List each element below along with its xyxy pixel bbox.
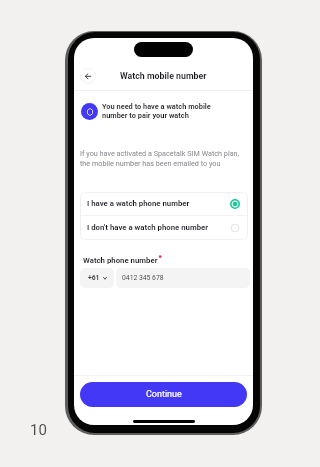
staticText: Watch phone number — [83, 256, 158, 265]
staticText: If you have activated a Spacetalk SIM Wa… — [80, 149, 240, 168]
button[interactable]: I have a watch phone number — [80, 192, 248, 215]
staticText: Watch mobile number — [120, 71, 207, 81]
staticText: You need to have a watch mobile number t… — [102, 102, 211, 120]
button[interactable]: Back — [80, 68, 96, 84]
button[interactable]: Continue — [80, 382, 247, 407]
button[interactable]: I don't have a watch phone number — [80, 216, 248, 239]
staticText: Continue — [146, 389, 182, 400]
staticText: +61 — [88, 274, 100, 282]
staticText: 0412 345 678 — [122, 274, 164, 282]
staticText: 10 — [30, 421, 47, 439]
button[interactable]: 0412 345 678 — [116, 268, 250, 288]
staticText: I have a watch phone number — [87, 199, 230, 208]
staticText: I don't have a watch phone number — [87, 223, 230, 232]
button[interactable]: +61 — [80, 268, 114, 288]
